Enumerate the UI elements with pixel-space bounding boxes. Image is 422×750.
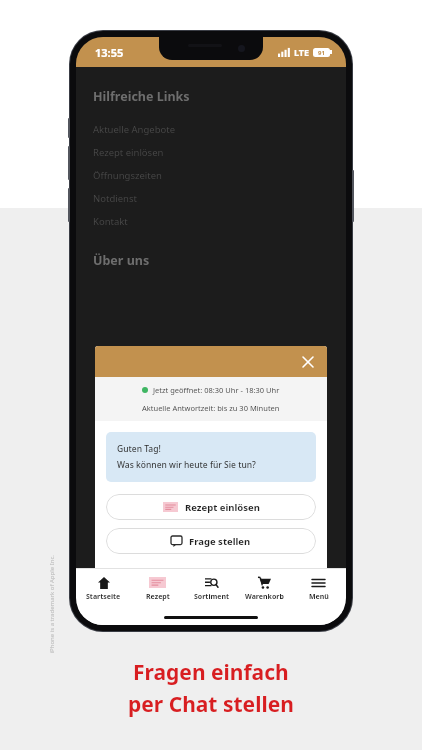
staticText: Aktuelle Antwortzeit: bis zu 30 Minuten — [142, 403, 280, 413]
staticText: Kontakt — [93, 215, 128, 228]
staticText: Öffnungszeiten — [93, 169, 162, 182]
staticText: Hilfreiche Links — [93, 88, 190, 105]
button[interactable]: Frage stellen — [106, 528, 316, 554]
staticText: Jetzt geöffnet: 08:30 Uhr - 18:30 Uhr — [153, 385, 280, 395]
button[interactable]: Rezept einlösen — [106, 494, 316, 520]
staticText: 91 — [318, 49, 325, 57]
staticText: Menü — [309, 592, 329, 602]
button[interactable]: Menü — [292, 569, 345, 609]
button[interactable]: Notdienst — [93, 187, 346, 210]
button[interactable]: Rezept einlösen — [93, 141, 346, 164]
button[interactable]: Chat schließen — [297, 351, 319, 373]
button[interactable]: Öffnungszeiten — [93, 164, 346, 187]
staticText: Warenkorb — [245, 592, 284, 602]
staticText: 13:55 — [95, 45, 124, 60]
staticText: Guten Tag! — [117, 443, 161, 455]
staticText: Was können wir heute für Sie tun? — [117, 459, 256, 471]
button[interactable]: Startseite — [77, 569, 130, 609]
staticText: Über uns — [93, 252, 150, 269]
staticText: Sortiment — [194, 592, 230, 602]
staticText: Startseite — [86, 592, 121, 602]
staticText: Frage stellen — [189, 535, 251, 548]
staticText: Fragen einfach — [133, 658, 289, 687]
button[interactable]: Sortiment — [185, 569, 238, 609]
button[interactable]: Aktuelle Angebote — [93, 118, 346, 141]
staticText: Rezept einlösen — [93, 146, 164, 159]
staticText: Rezept — [146, 592, 170, 602]
staticText: per Chat stellen — [128, 690, 294, 719]
staticText: LTE — [294, 46, 310, 58]
button[interactable]: Warenkorb — [238, 569, 291, 609]
staticText: Aktuelle Angebote — [93, 123, 176, 136]
staticText: Notdienst — [93, 192, 137, 205]
staticText: iPhone is a trademark of Apple Inc. — [47, 554, 55, 653]
button[interactable]: Kontakt — [93, 210, 346, 233]
staticText: Rezept einlösen — [185, 501, 260, 514]
button[interactable]: Rezept — [131, 569, 184, 609]
